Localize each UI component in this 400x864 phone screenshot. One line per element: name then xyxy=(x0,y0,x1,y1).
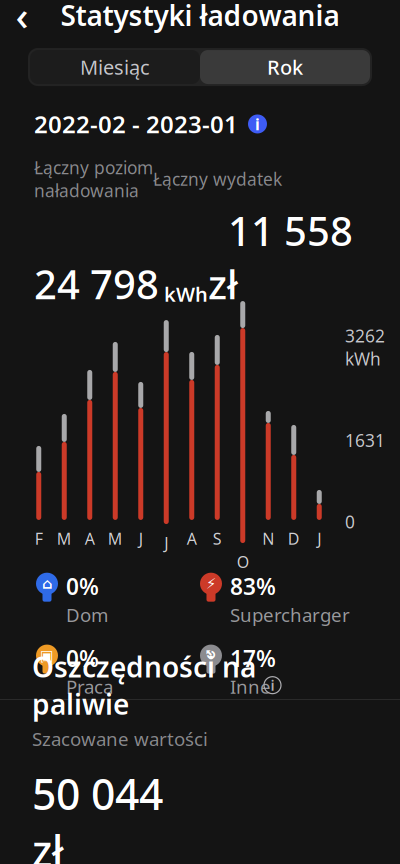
staticText: 50 044 zł xyxy=(32,765,163,864)
staticText: M xyxy=(57,528,72,549)
staticText: J xyxy=(317,528,321,549)
staticText: Inne xyxy=(230,674,271,699)
button[interactable]: Rok xyxy=(200,50,370,84)
staticText: i xyxy=(270,675,274,695)
staticText: D xyxy=(288,528,300,549)
staticText: ⚡︎ xyxy=(206,575,216,592)
staticText: 17% xyxy=(230,643,276,673)
staticText: Oszczędności na paliwie xyxy=(32,648,256,722)
staticText: i xyxy=(255,113,260,134)
staticText: F xyxy=(35,528,43,549)
staticText: ▣ xyxy=(40,647,54,664)
staticText: 0% xyxy=(66,643,99,673)
staticText: Łączny wydatek xyxy=(153,167,282,190)
staticText: Praca xyxy=(66,674,113,699)
staticText: Supercharger xyxy=(230,602,350,627)
button[interactable]: Informacje o oszczędnościach xyxy=(264,675,281,695)
staticText: N xyxy=(262,528,274,549)
staticText: ⌂ xyxy=(42,575,52,592)
button[interactable]: Back xyxy=(0,0,44,37)
staticText: J xyxy=(139,528,143,549)
staticText: kWh xyxy=(159,281,208,307)
button[interactable]: Informacje xyxy=(248,113,267,134)
staticText: kWh xyxy=(345,347,381,370)
staticText: A xyxy=(85,528,95,549)
staticText: 83% xyxy=(230,571,276,601)
staticText: J xyxy=(164,532,168,553)
staticText: 1631 xyxy=(345,429,385,452)
staticText: 11 558 zł xyxy=(208,204,353,310)
staticText: Rok xyxy=(267,54,303,80)
staticText: Statystyki ładowania xyxy=(60,0,339,34)
staticText: 2022-02 - 2023-01 xyxy=(34,108,238,140)
staticText: 0 xyxy=(345,510,355,533)
staticText: ⎋ xyxy=(206,647,215,664)
staticText: 3262 xyxy=(345,324,385,347)
staticText: Dom xyxy=(66,602,108,627)
staticText: 0% xyxy=(66,571,99,601)
staticText: M xyxy=(108,528,123,549)
staticText: ‹ xyxy=(15,0,28,42)
staticText: O xyxy=(237,551,249,572)
staticText: Łączny poziom naładowania xyxy=(34,156,153,202)
staticText: A xyxy=(187,528,197,549)
staticText: Szacowane wartości xyxy=(32,726,208,751)
staticText: Miesiąc xyxy=(80,54,150,80)
staticText: 24 798 xyxy=(34,257,159,310)
staticText: S xyxy=(213,528,222,549)
button[interactable]: Miesiąc xyxy=(30,50,200,84)
